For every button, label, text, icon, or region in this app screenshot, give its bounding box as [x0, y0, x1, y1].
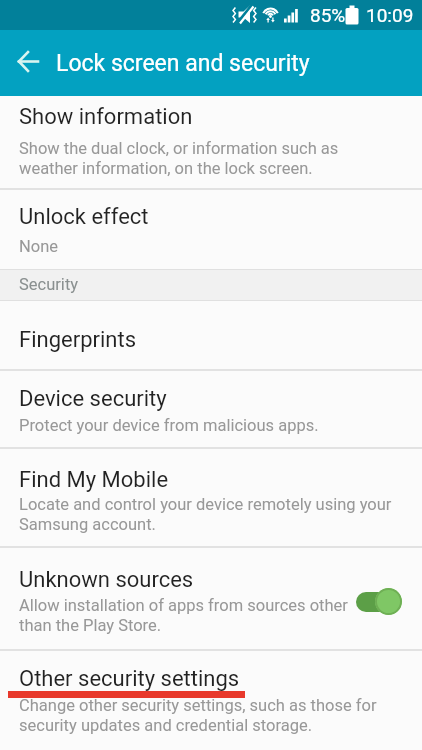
staticText: Device security: [19, 386, 167, 412]
staticText: 85%: [310, 4, 346, 26]
staticText: Other security settings: [19, 666, 240, 692]
staticText: Unlock effect: [19, 204, 149, 230]
staticText: Fingerprints: [19, 327, 136, 353]
button[interactable]: Show information: [0, 96, 422, 188]
button[interactable]: Unknown sources: [0, 548, 422, 649]
staticText: Allow installation of apps from sources …: [19, 596, 348, 635]
button[interactable]: Other security settings: [0, 651, 422, 750]
staticText: Change other security settings, such as …: [19, 696, 377, 735]
staticText: Security: [19, 275, 79, 294]
button[interactable]: Find My Mobile: [0, 449, 422, 546]
button[interactable]: [14, 47, 42, 75]
button[interactable]: Unlock effect: [0, 190, 422, 269]
staticText: Protect your device from malicious apps.: [19, 416, 319, 435]
staticText: Locate and control your device remotely …: [19, 495, 392, 534]
button[interactable]: Device security: [0, 371, 422, 447]
button[interactable]: Fingerprints: [0, 301, 422, 369]
staticText: Lock screen and security: [56, 50, 310, 77]
staticText: Unknown sources: [19, 567, 194, 593]
staticText: 10:09: [366, 4, 414, 26]
staticText: Find My Mobile: [19, 467, 169, 493]
staticText: Show information: [19, 104, 193, 130]
staticText: None: [19, 237, 59, 256]
staticText: Show the dual clock, or information such…: [19, 139, 339, 178]
